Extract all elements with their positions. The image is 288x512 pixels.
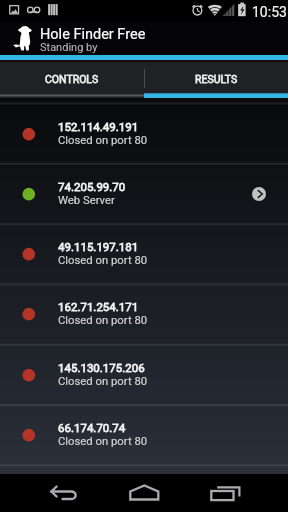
staticText: 162.71.254.171 [58, 300, 139, 313]
staticText: 10:53 [252, 4, 287, 20]
staticText: Closed on port 80 [58, 314, 148, 327]
staticText: Closed on port 80 [58, 435, 148, 448]
staticText: RESULTS [195, 73, 238, 85]
staticText: 49.115.197.181 [58, 240, 139, 253]
staticText: Closed on port 80 [58, 254, 148, 267]
button[interactable]: RESULTS [144, 62, 288, 98]
staticText: CONTROLS [45, 73, 99, 85]
staticText: Web Server [58, 194, 115, 207]
button[interactable]: Recent apps [206, 474, 244, 512]
button[interactable]: 145.130.175.206 [0, 345, 288, 405]
button[interactable]: 152.114.49.191 [0, 104, 288, 164]
button[interactable]: 66.174.70.74 [0, 405, 288, 465]
button[interactable]: App icon [0, 21, 39, 55]
button[interactable]: 49.115.197.181 [0, 224, 288, 284]
staticText: 66.174.70.74 [58, 421, 126, 434]
staticText: Standing by [40, 41, 98, 54]
staticText: Closed on port 80 [58, 134, 148, 147]
staticText: Hole Finder Free [40, 26, 146, 43]
staticText: Closed on port 80 [58, 375, 148, 388]
button[interactable]: 74.205.99.70 [0, 164, 288, 224]
staticText: 74.205.99.70 [58, 180, 126, 193]
staticText: 152.114.49.191 [58, 120, 139, 133]
button[interactable]: Back [44, 474, 84, 512]
button[interactable]: Open details [252, 187, 266, 201]
button[interactable]: 162.71.254.171 [0, 284, 288, 344]
button[interactable]: Home [126, 474, 164, 512]
button[interactable]: CONTROLS [0, 62, 144, 98]
staticText: 145.130.175.206 [58, 361, 145, 374]
